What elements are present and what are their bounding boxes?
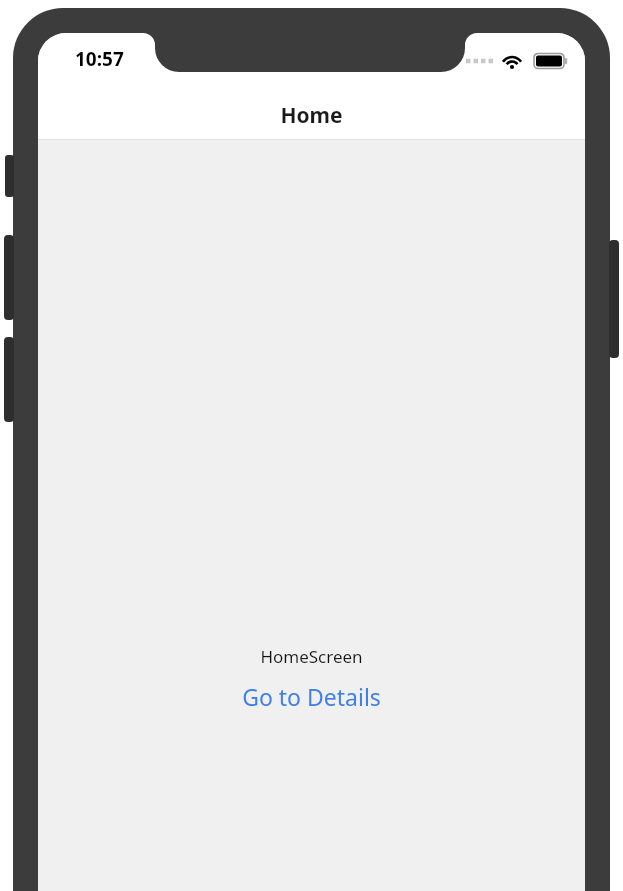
staticText: Home (38, 101, 585, 130)
other: Status indicators (466, 48, 571, 74)
button[interactable]: Go to Details (242, 681, 381, 712)
staticText: HomeScreen (260, 645, 363, 668)
staticText: 10:57 (75, 46, 124, 72)
staticText: Go to Details (242, 681, 381, 712)
